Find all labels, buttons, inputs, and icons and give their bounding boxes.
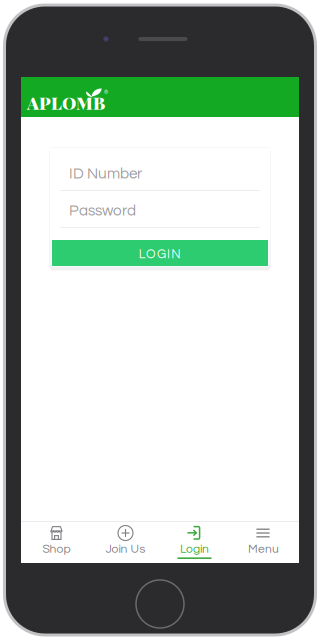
staticText: Password [69,203,136,219]
staticText: Shop [42,543,70,555]
button[interactable]: Login [160,522,229,562]
button[interactable]: Join Us [91,522,160,562]
staticText: ID Number [69,166,142,182]
button[interactable]: LOGIN [52,240,268,266]
staticText: ® [104,90,108,95]
staticText: Login [180,543,209,555]
button[interactable]: Shop [22,522,91,562]
staticText: Menu [248,543,279,555]
staticText: Join Us [105,543,145,555]
staticText: LOGIN [139,248,180,261]
button[interactable]: Menu [229,522,298,562]
staticText: APLOMB [27,91,105,114]
